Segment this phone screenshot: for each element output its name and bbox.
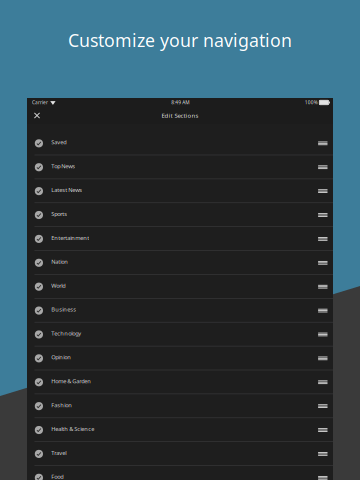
staticText: Top News — [51, 162, 75, 170]
staticText: Saved — [51, 138, 66, 146]
button[interactable]: Technology — [27, 322, 333, 346]
staticText: Opinion — [51, 353, 71, 361]
staticText: 8:49 AM — [171, 99, 189, 106]
staticText: Business — [51, 305, 76, 313]
button[interactable]: Nation — [27, 251, 333, 275]
staticText: Fashion — [51, 401, 72, 409]
button[interactable]: Latest News — [27, 179, 333, 203]
staticText: Food — [51, 473, 63, 480]
button[interactable]: Close — [29, 107, 45, 123]
button[interactable]: Entertainment — [27, 227, 333, 251]
staticText: Entertainment — [51, 234, 89, 241]
button[interactable]: Opinion — [27, 346, 333, 370]
button[interactable]: Home & Garden — [27, 370, 333, 394]
button[interactable]: Travel — [27, 442, 333, 466]
button[interactable]: Fashion — [27, 394, 333, 418]
button[interactable]: World — [27, 275, 333, 299]
staticText: Home & Garden — [51, 377, 91, 385]
staticText: Latest News — [51, 186, 82, 194]
staticText: Edit Sections — [161, 111, 198, 120]
staticText: 100% — [305, 99, 318, 106]
staticText: Customize your navigation — [68, 28, 292, 52]
button[interactable]: Top News — [27, 155, 333, 179]
button[interactable]: Health & Science — [27, 418, 333, 442]
staticText: Travel — [51, 449, 66, 457]
staticText: Nation — [51, 258, 68, 265]
staticText: Sports — [51, 210, 67, 218]
staticText: Carrier — [32, 99, 48, 106]
staticText: Health & Science — [51, 425, 94, 433]
button[interactable]: Business — [27, 299, 333, 322]
button[interactable]: Food — [27, 466, 333, 480]
staticText: Technology — [51, 329, 81, 337]
button[interactable]: Sports — [27, 203, 333, 227]
staticText: World — [51, 282, 65, 289]
button[interactable]: Saved — [27, 131, 333, 155]
